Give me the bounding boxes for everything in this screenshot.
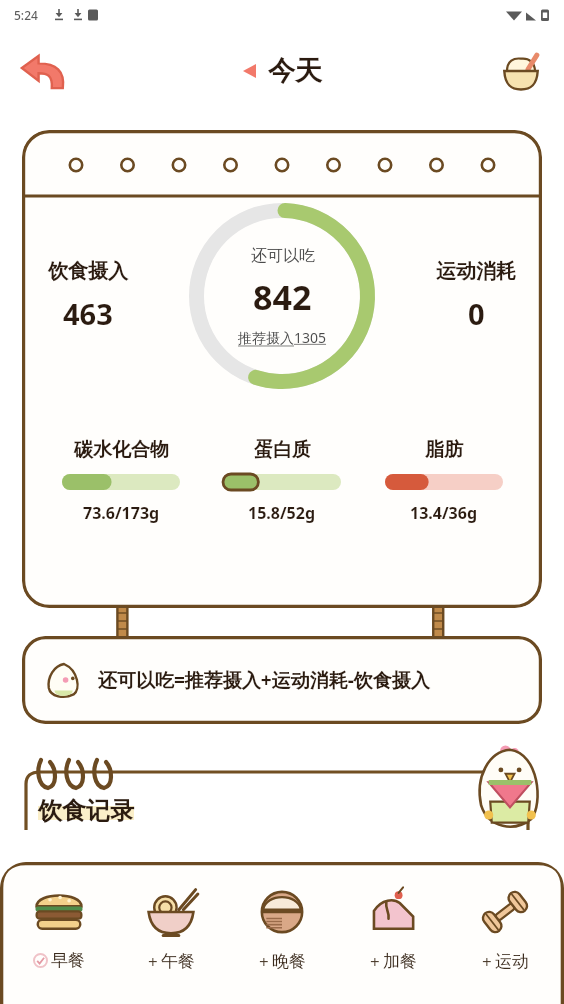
button[interactable]: 还可以吃=推荐摄入+运动消耗-饮食摄入 [22,636,542,724]
staticText: 运动消耗 [436,259,516,284]
staticText: 还可以吃=推荐摄入+运动消耗-饮食摄入 [98,667,430,693]
staticText: 运动 [495,951,529,972]
staticText: 463 [63,294,113,333]
staticText: 0 [468,294,485,333]
staticText: 还可以吃 [251,246,315,266]
button[interactable]: Back [14,42,72,100]
staticText: 午餐 [161,951,195,972]
button[interactable]: 饮食摄入 [22,130,542,608]
staticText: 加餐 [383,951,417,972]
staticText: 早餐 [51,950,85,971]
staticText: + [148,950,158,973]
button[interactable]: Recipes [492,42,550,100]
button[interactable]: + [230,880,334,977]
staticText: 饮食记录 [38,796,134,826]
button[interactable]: + [119,880,223,977]
staticText: 73.6/173g [83,502,160,524]
staticText: + [482,950,492,973]
staticText: 今天 [268,54,322,88]
staticText: 13.4/36g [410,502,478,524]
staticText: 饮食摄入 [48,259,128,284]
staticText: + [370,950,380,973]
button[interactable]: 碳水化合物 [46,438,196,524]
staticText: 晚餐 [272,951,306,972]
staticText: 碳水化合物 [74,438,169,462]
button[interactable]: 脂肪 [369,438,519,524]
button[interactable]: + [453,880,557,977]
staticText: + [259,950,269,973]
button[interactable]: 今天 [242,54,322,88]
staticText: 脂肪 [425,438,463,462]
button[interactable]: 早餐 [7,880,111,975]
staticText: 5:24 [14,7,38,23]
staticText: 推荐摄入1305 [238,328,327,347]
staticText: 蛋白质 [254,438,311,462]
staticText: 15.8/52g [248,502,316,524]
button[interactable]: 蛋白质 [207,438,357,524]
staticText: 842 [253,274,312,320]
button[interactable]: + [341,880,445,977]
